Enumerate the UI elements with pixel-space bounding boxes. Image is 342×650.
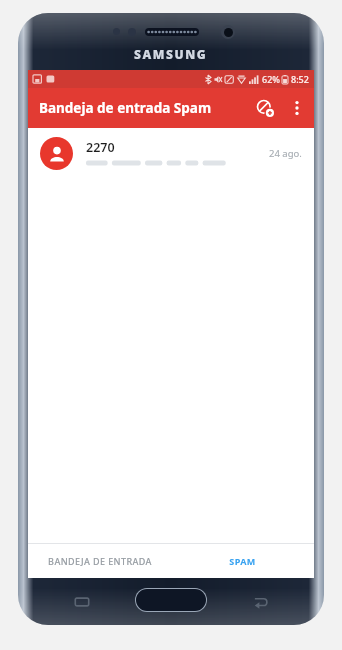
staticText: 62% — [262, 73, 280, 85]
staticText: SPAM — [229, 555, 256, 567]
other: Recents — [74, 594, 90, 610]
button[interactable]: 2270 — [28, 128, 314, 178]
staticText: 24 ago. — [269, 147, 302, 160]
button[interactable]: SPAM — [171, 544, 314, 578]
staticText: 8:52 — [291, 73, 309, 85]
staticText: BANDEJA DE ENTRADA — [48, 555, 152, 567]
staticText: SAMSUNG — [134, 46, 208, 62]
button[interactable]: Bloquear número — [248, 91, 282, 125]
button[interactable]: Más opciones — [282, 93, 312, 123]
other: Back — [252, 594, 268, 610]
other: Home — [136, 589, 206, 611]
staticText: 2270 — [86, 139, 115, 156]
button[interactable]: BANDEJA DE ENTRADA — [28, 544, 171, 578]
staticText: Bandeja de entrada Spam — [39, 99, 212, 117]
